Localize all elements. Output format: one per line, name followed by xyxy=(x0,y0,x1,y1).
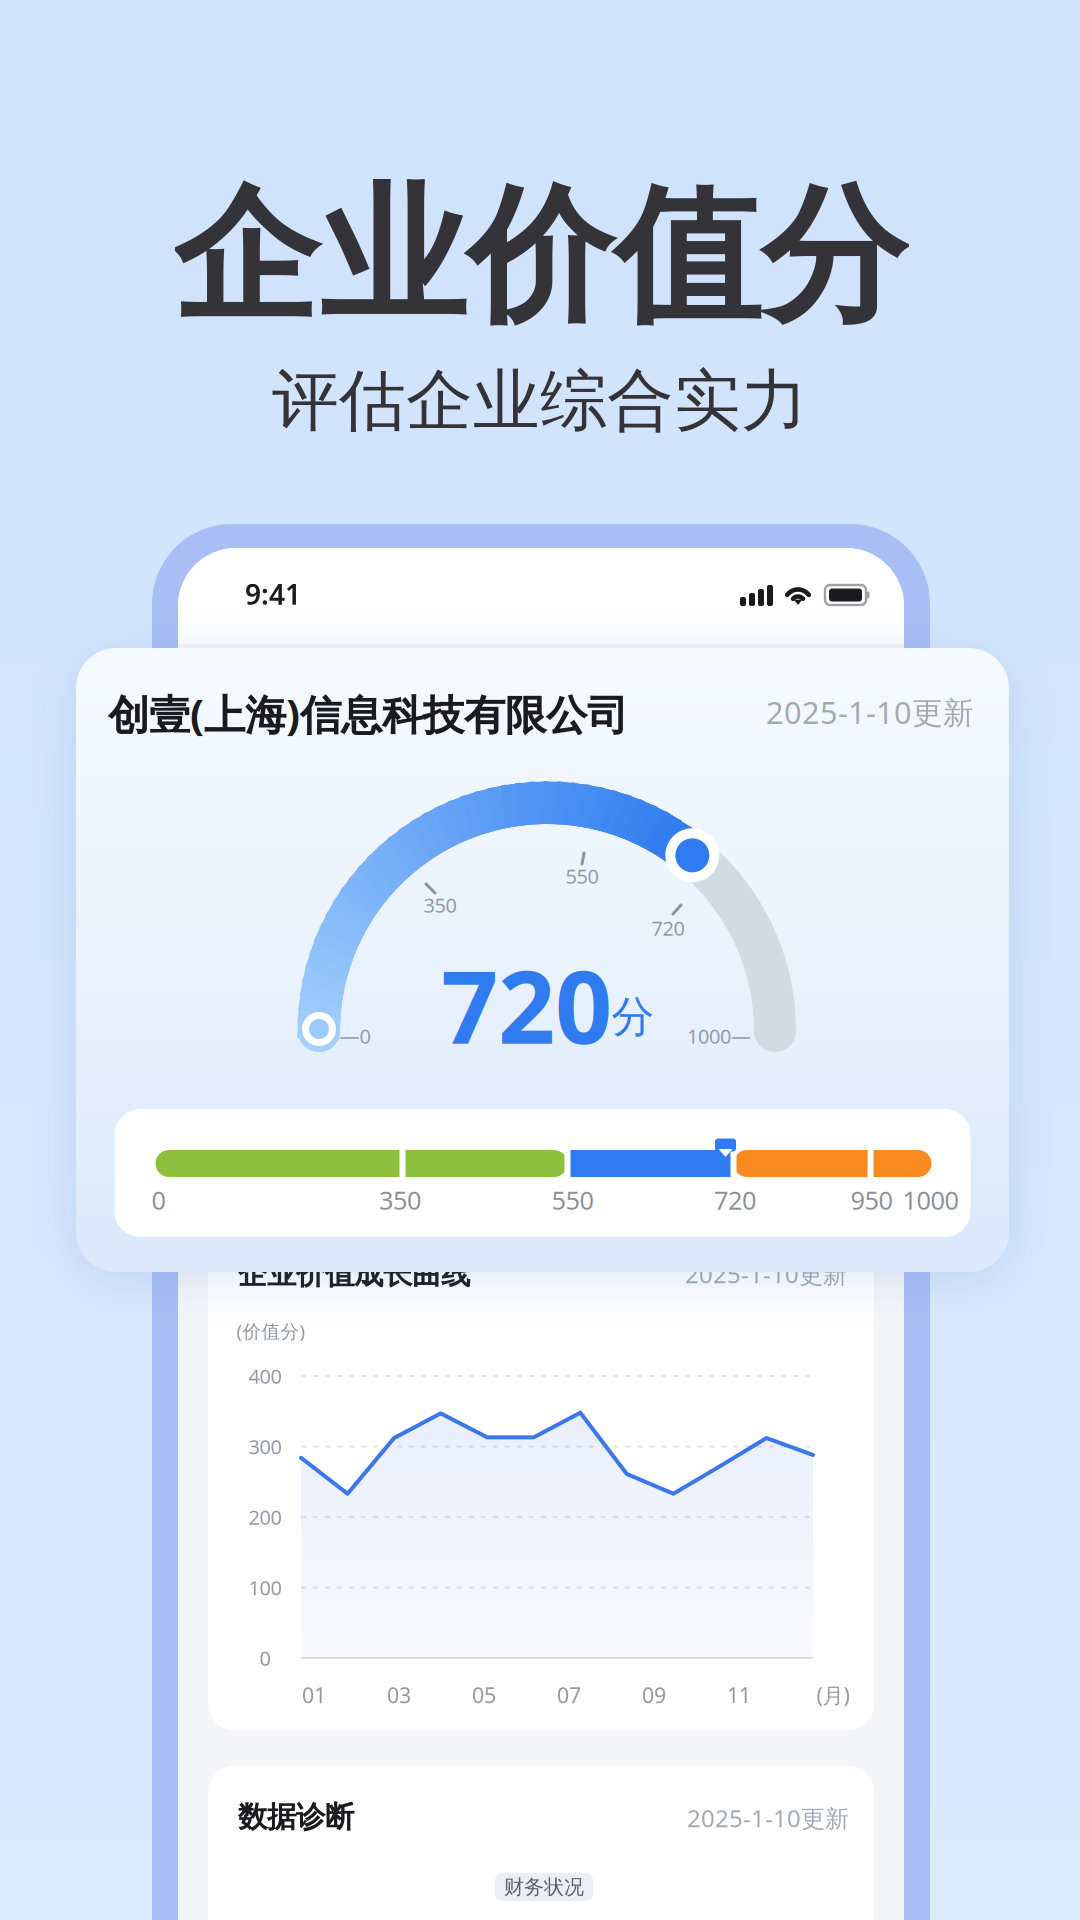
staticText: 720 xyxy=(651,915,684,941)
staticText: 2025-1-10更新 xyxy=(766,692,974,732)
staticText: 200 xyxy=(248,1504,281,1530)
staticText: 分 xyxy=(611,991,654,1043)
staticText: 720 xyxy=(441,939,612,1071)
staticText: 100 xyxy=(248,1574,281,1601)
staticText: 2025-1-10更新 xyxy=(685,1258,847,1290)
staticText: 350 xyxy=(423,892,456,918)
staticText: 0 xyxy=(151,1183,165,1217)
staticText: 400 xyxy=(248,1363,281,1389)
staticText: 1000 xyxy=(902,1183,958,1217)
staticText: (月) xyxy=(816,1681,849,1709)
staticText: 9:41 xyxy=(245,575,301,613)
staticText: 300 xyxy=(248,1433,281,1460)
staticText: —0 xyxy=(339,1023,370,1049)
staticText: 1000— xyxy=(687,1023,751,1049)
staticText: 企业价值分 xyxy=(172,167,907,347)
staticText: 企业价值成长曲线 xyxy=(238,1256,470,1292)
staticText: 950 xyxy=(850,1183,892,1217)
staticText: 720 xyxy=(714,1183,756,1217)
staticText: 09 xyxy=(642,1681,666,1709)
staticText: 评估企业综合实力 xyxy=(272,360,808,442)
staticText: 11 xyxy=(727,1681,751,1709)
staticText: 550 xyxy=(551,1183,593,1217)
staticText: 350 xyxy=(379,1183,421,1217)
staticText: (价值分) xyxy=(236,1319,305,1343)
staticText: 2025-1-10更新 xyxy=(687,1802,849,1834)
staticText: 创壹(上海)信息科技有限公司 xyxy=(108,687,628,741)
staticText: 01 xyxy=(302,1681,326,1709)
staticText: 07 xyxy=(557,1681,581,1709)
staticText: 0 xyxy=(259,1645,270,1671)
staticText: 03 xyxy=(387,1681,411,1709)
staticText: 550 xyxy=(565,863,598,889)
staticText: 05 xyxy=(472,1681,496,1709)
staticText: 数据诊断 xyxy=(238,1799,354,1835)
staticText: 财务状况 xyxy=(504,1875,584,1899)
